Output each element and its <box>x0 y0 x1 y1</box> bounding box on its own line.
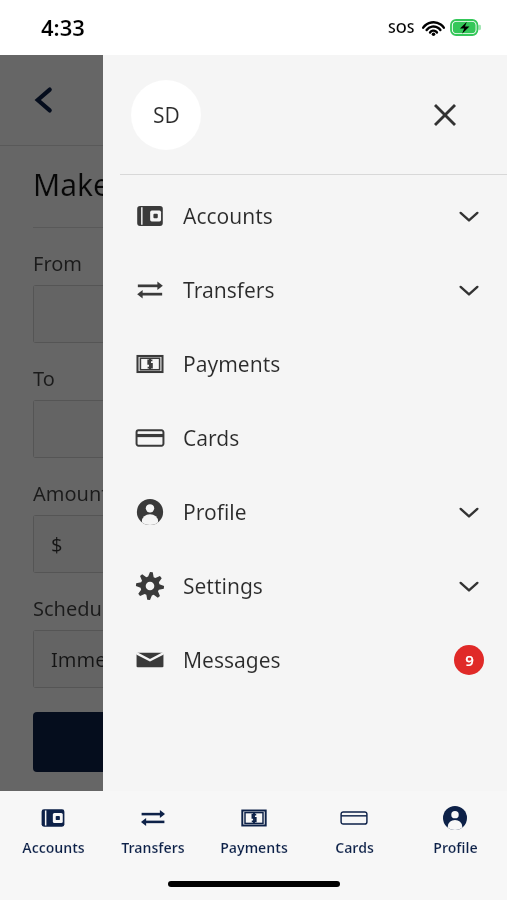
staticText: Accounts <box>183 202 273 231</box>
button[interactable]: Cards <box>103 401 507 475</box>
staticText: Cards <box>335 838 374 857</box>
button[interactable]: Transfers <box>105 801 201 859</box>
staticText: 9 <box>465 650 474 670</box>
button[interactable]: Profile <box>407 801 503 859</box>
button[interactable]: Settings <box>103 549 507 623</box>
staticText: Transfers <box>183 276 275 305</box>
staticText: Cards <box>183 424 240 453</box>
button[interactable]: Profile <box>103 475 507 549</box>
button[interactable]: Immediately <box>33 630 474 688</box>
button[interactable]: Accounts <box>103 179 507 253</box>
staticText: From <box>33 250 83 277</box>
staticText: SOS <box>388 18 415 37</box>
button[interactable]: Cards <box>306 801 402 859</box>
button[interactable]: SD <box>131 80 201 150</box>
staticText: Accounts <box>22 838 85 857</box>
button[interactable]: Payments <box>103 327 507 401</box>
staticText: Amount <box>33 480 109 507</box>
staticText: Make a Transfer <box>33 164 259 205</box>
staticText: Profile <box>183 498 247 527</box>
staticText: Messages <box>183 646 281 675</box>
button[interactable]: Messages <box>103 623 507 697</box>
button[interactable] <box>33 285 474 343</box>
staticText: SD <box>153 101 180 130</box>
staticText: Settings <box>183 572 263 601</box>
staticText: Payments <box>220 838 288 857</box>
button[interactable]: $ <box>33 515 474 573</box>
button[interactable] <box>33 400 474 458</box>
button[interactable]: Back <box>22 78 66 122</box>
staticText: Immediately <box>51 646 169 673</box>
button[interactable]: Continue <box>33 712 474 772</box>
staticText: Payments <box>183 350 281 379</box>
staticText: Schedule <box>33 595 119 622</box>
staticText: $ <box>51 531 63 558</box>
staticText: Transfers <box>121 838 185 857</box>
staticText: To <box>33 365 55 392</box>
button[interactable]: Transfers <box>103 253 507 327</box>
button[interactable]: Accounts <box>5 801 101 859</box>
staticText: Profile <box>433 838 478 857</box>
button[interactable]: Close menu <box>423 93 467 137</box>
button[interactable]: Payments <box>206 801 302 859</box>
staticText: 4:33 <box>41 12 85 42</box>
